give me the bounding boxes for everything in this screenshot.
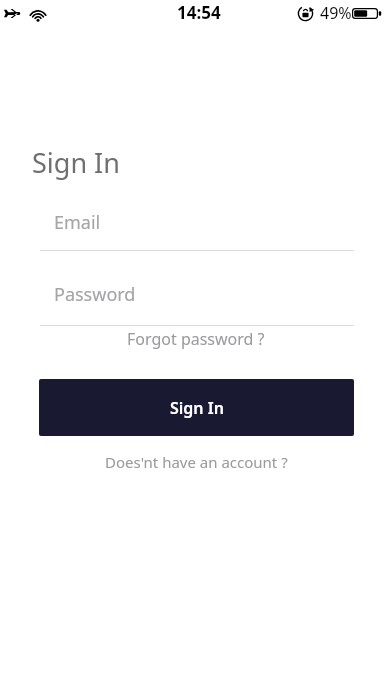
staticText: Sign In xyxy=(170,397,224,419)
staticText: Email xyxy=(54,210,101,235)
button[interactable]: Forgot password ? xyxy=(127,328,265,350)
staticText: Password xyxy=(54,282,136,307)
button[interactable]: Does'nt have an account ? xyxy=(105,452,288,472)
staticText: 14:54 xyxy=(177,1,221,24)
staticText: Sign In xyxy=(32,144,120,181)
staticText: 49% xyxy=(320,2,352,24)
button[interactable]: Sign In xyxy=(39,379,354,436)
